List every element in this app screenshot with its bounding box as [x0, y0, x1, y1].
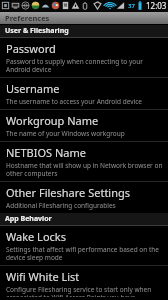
staticText: Username	[6, 81, 60, 96]
staticText: Wake Locks	[6, 229, 66, 244]
button[interactable]: Workgroup Name	[0, 110, 168, 141]
staticText: Hostname that will show up in Network br…	[6, 161, 163, 178]
button[interactable]: NETBIOS Name	[0, 142, 168, 181]
staticText: Additional Filesharing configurables	[6, 201, 116, 210]
button[interactable]: Other Fileshare Settings	[0, 182, 168, 213]
button[interactable]: Password	[0, 38, 168, 77]
staticText: Password	[6, 41, 56, 56]
staticText: Settings that affect wifi performance ba…	[6, 245, 159, 262]
button[interactable]: App Behavior	[0, 213, 168, 225]
staticText: Other Fileshare Settings	[6, 185, 131, 200]
staticText: Password to supply when connecting to yo…	[6, 57, 143, 74]
staticText: Configure Filesharing service to start o…	[6, 285, 152, 297]
staticText: 37	[128, 2, 135, 10]
staticText: Preferences	[5, 13, 50, 23]
button[interactable]: Username	[0, 78, 168, 109]
staticText: Wifi White List	[6, 269, 80, 284]
staticText: 12:03	[146, 0, 167, 11]
staticText: Workgroup Name	[6, 113, 99, 128]
staticText: The name of your Windows workgroup	[6, 129, 125, 138]
button[interactable]: Wake Locks	[0, 226, 168, 265]
button[interactable]: User & Filesharing	[0, 25, 168, 37]
staticText: NETBIOS Name	[6, 145, 86, 160]
staticText: The username to access your Android devi…	[6, 97, 142, 106]
staticText: App Behavior	[5, 214, 52, 224]
button[interactable]: Wifi White List	[0, 266, 168, 300]
staticText: User & Filesharing	[5, 26, 69, 36]
